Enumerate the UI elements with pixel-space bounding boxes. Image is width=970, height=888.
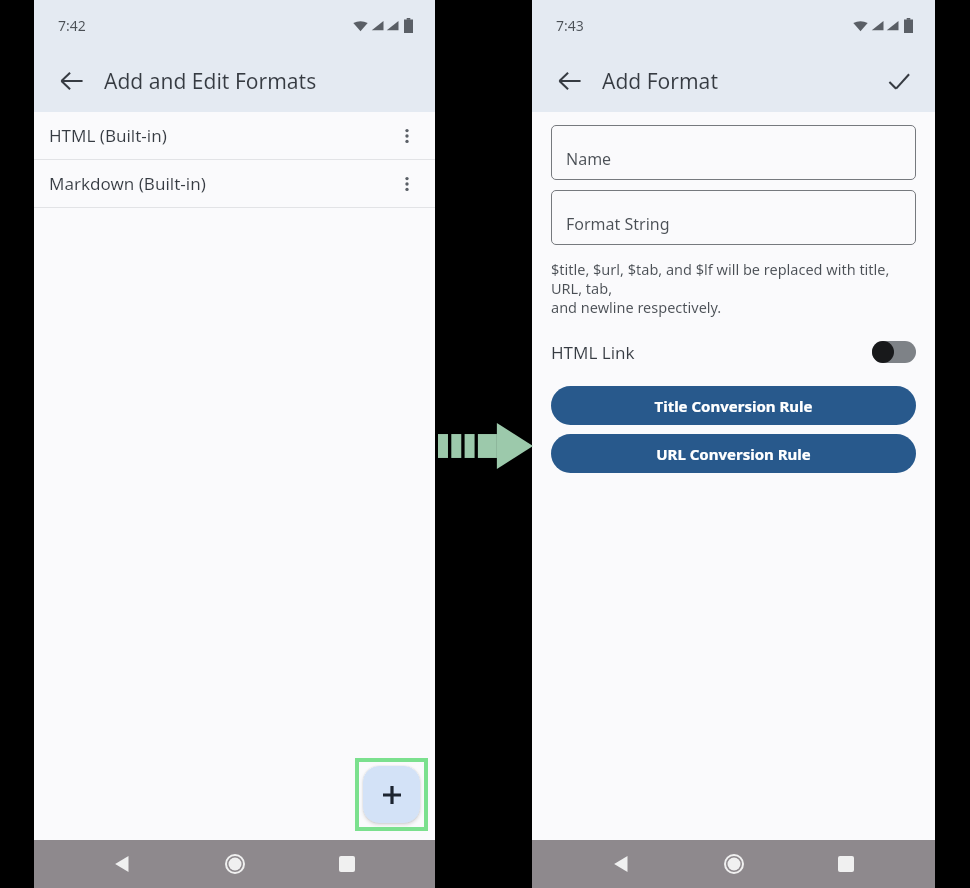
button[interactable]: HTML Link (551, 331, 916, 373)
staticText: Add and Edit Formats (104, 67, 317, 96)
button[interactable]: Title Conversion Rule (551, 386, 916, 425)
staticText: HTML (Built-in) (49, 124, 387, 147)
staticText: $title, $url, $tab, and $lf will be repl… (551, 259, 916, 317)
button[interactable]: Back (50, 59, 94, 103)
button[interactable]: Back (597, 840, 645, 888)
button[interactable]: Recent apps (323, 840, 371, 888)
button[interactable]: Format String (551, 190, 916, 245)
button[interactable]: Markdown (Built-in) (34, 160, 435, 207)
button[interactable]: Add format (363, 766, 420, 823)
staticText: HTML Link (551, 341, 872, 364)
staticText: 7:42 (58, 16, 86, 35)
button[interactable]: More options (387, 164, 427, 204)
staticText: Add Format (602, 67, 877, 96)
button[interactable]: More options (387, 116, 427, 156)
staticText: 7:43 (556, 16, 584, 35)
button[interactable]: Recent apps (822, 840, 870, 888)
button[interactable]: Save (877, 59, 921, 103)
button[interactable]: HTML (Built-in) (34, 112, 435, 159)
button[interactable]: Home (211, 840, 259, 888)
staticText: URL Conversion Rule (656, 444, 811, 464)
button[interactable]: Back (34, 50, 435, 112)
staticText: Markdown (Built-in) (49, 172, 387, 195)
staticText: Title Conversion Rule (654, 396, 813, 416)
button[interactable]: URL Conversion Rule (551, 434, 916, 473)
button[interactable]: Back (98, 840, 146, 888)
button[interactable]: Name (551, 125, 916, 180)
button[interactable]: Back (548, 59, 592, 103)
staticText: Format String (566, 213, 670, 235)
button[interactable]: Home (710, 840, 758, 888)
staticText: Name (566, 148, 612, 170)
